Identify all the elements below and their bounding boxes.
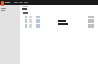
button[interactable]: [0, 9, 20, 11]
button[interactable]: App logo: [1, 1, 4, 6]
button[interactable]: [20, 23, 98, 26]
button[interactable]: [20, 15, 98, 18]
button[interactable]: [20, 18, 98, 21]
button[interactable]: [20, 25, 98, 28]
button[interactable]: [0, 7, 20, 9]
button[interactable]: [20, 20, 98, 23]
